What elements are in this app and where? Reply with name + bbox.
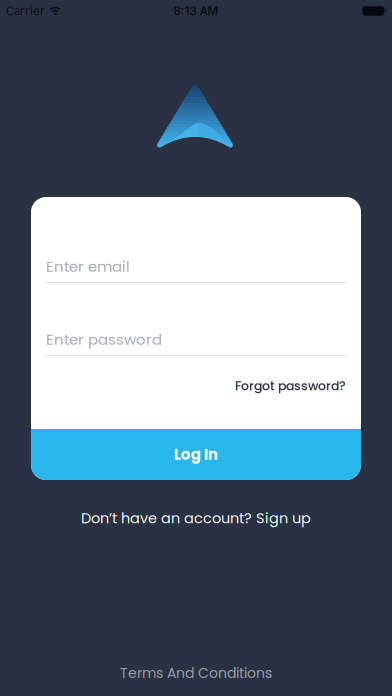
staticText: Log In	[174, 444, 218, 465]
button[interactable]: Don’t have an account? Sign up	[81, 508, 311, 528]
staticText: 8:13 AM	[173, 4, 218, 18]
button[interactable]: Log In	[31, 429, 361, 480]
staticText: Carrier	[6, 4, 44, 18]
staticText: Don’t have an account? Sign up	[81, 508, 311, 528]
staticText: Terms And Conditions	[120, 663, 272, 683]
staticText: Enter password	[46, 329, 162, 350]
button[interactable]: Enter password	[46, 329, 346, 356]
button[interactable]: Enter email	[46, 256, 346, 283]
staticText: Enter email	[46, 256, 130, 277]
button[interactable]: Terms And Conditions	[120, 663, 272, 683]
staticText: Forgot password?	[235, 377, 346, 394]
button[interactable]: Forgot password?	[235, 377, 346, 394]
